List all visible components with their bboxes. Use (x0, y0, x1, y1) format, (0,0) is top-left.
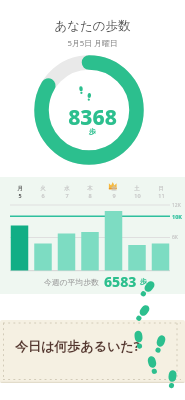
button[interactable]: 木 (78, 185, 102, 199)
button[interactable]: 火 (31, 185, 55, 199)
staticText: 月 (17, 185, 23, 192)
staticText: 6583 (104, 272, 137, 291)
button[interactable]: 月 (8, 185, 32, 199)
staticText: 土 (134, 185, 140, 192)
staticText: 火 (40, 185, 46, 192)
staticText: 今週の平均歩数 (44, 277, 99, 287)
staticText: 水 (64, 185, 70, 192)
staticText: 11 (158, 192, 165, 199)
staticText: 12K (172, 202, 181, 209)
staticText: 10K (172, 213, 182, 220)
staticText: 日 (158, 185, 164, 192)
staticText: 9 (112, 192, 116, 199)
button[interactable]: 金 (102, 185, 126, 199)
staticText: 5 (18, 192, 22, 199)
staticText: 8 (88, 192, 92, 199)
staticText: 木 (87, 185, 93, 192)
staticText: 8368 (0, 103, 185, 132)
staticText: 6K (172, 234, 178, 241)
staticText: 5月5日 月曜日 (0, 38, 185, 49)
staticText: 6 (41, 192, 45, 199)
button[interactable]: 日 (149, 185, 173, 199)
staticText: 金 (111, 185, 117, 192)
button[interactable] (0, 320, 185, 383)
staticText: 10 (134, 192, 141, 199)
staticText: 歩 (0, 127, 185, 136)
staticText: 7 (65, 192, 69, 199)
staticText: 今日は何歩あるいた? (15, 337, 140, 355)
staticText: 歩 (140, 277, 147, 286)
staticText: あなたの歩数 (0, 18, 185, 34)
button[interactable]: 土 (125, 185, 149, 199)
button[interactable]: 水 (55, 185, 79, 199)
